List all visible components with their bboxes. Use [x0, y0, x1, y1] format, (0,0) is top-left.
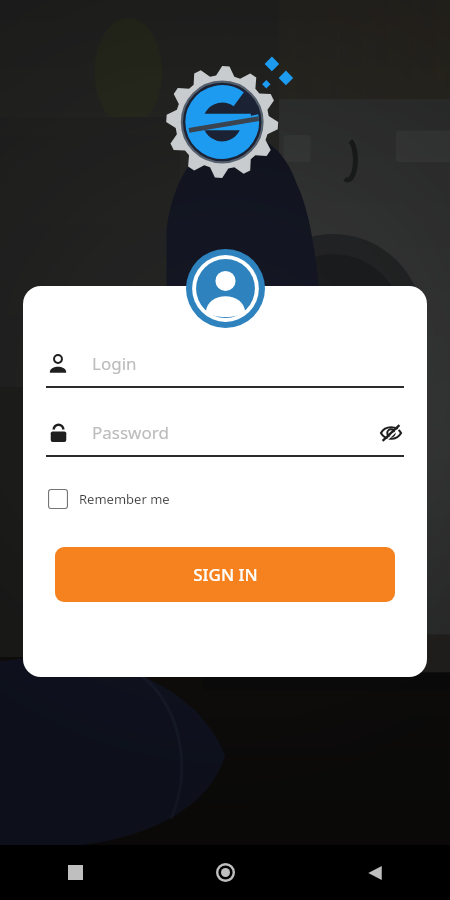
button[interactable]: Remember me — [46, 485, 172, 513]
staticText: Login — [92, 352, 137, 375]
button[interactable]: Password — [46, 410, 404, 457]
staticText: SIGN IN — [193, 563, 258, 586]
button[interactable]: Recents — [0, 845, 150, 900]
staticText: Remember me — [79, 490, 170, 508]
button[interactable]: Profile — [186, 249, 265, 328]
button[interactable]: Home — [150, 845, 300, 900]
staticText: Password — [92, 421, 169, 444]
button[interactable]: Login — [46, 341, 404, 388]
button[interactable]: Back — [300, 845, 450, 900]
button[interactable]: SIGN IN — [55, 547, 395, 602]
